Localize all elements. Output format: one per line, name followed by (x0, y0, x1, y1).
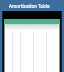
button[interactable]: Amortization Table (0, 0, 64, 11)
staticText: Amortization Table (9, 3, 50, 9)
